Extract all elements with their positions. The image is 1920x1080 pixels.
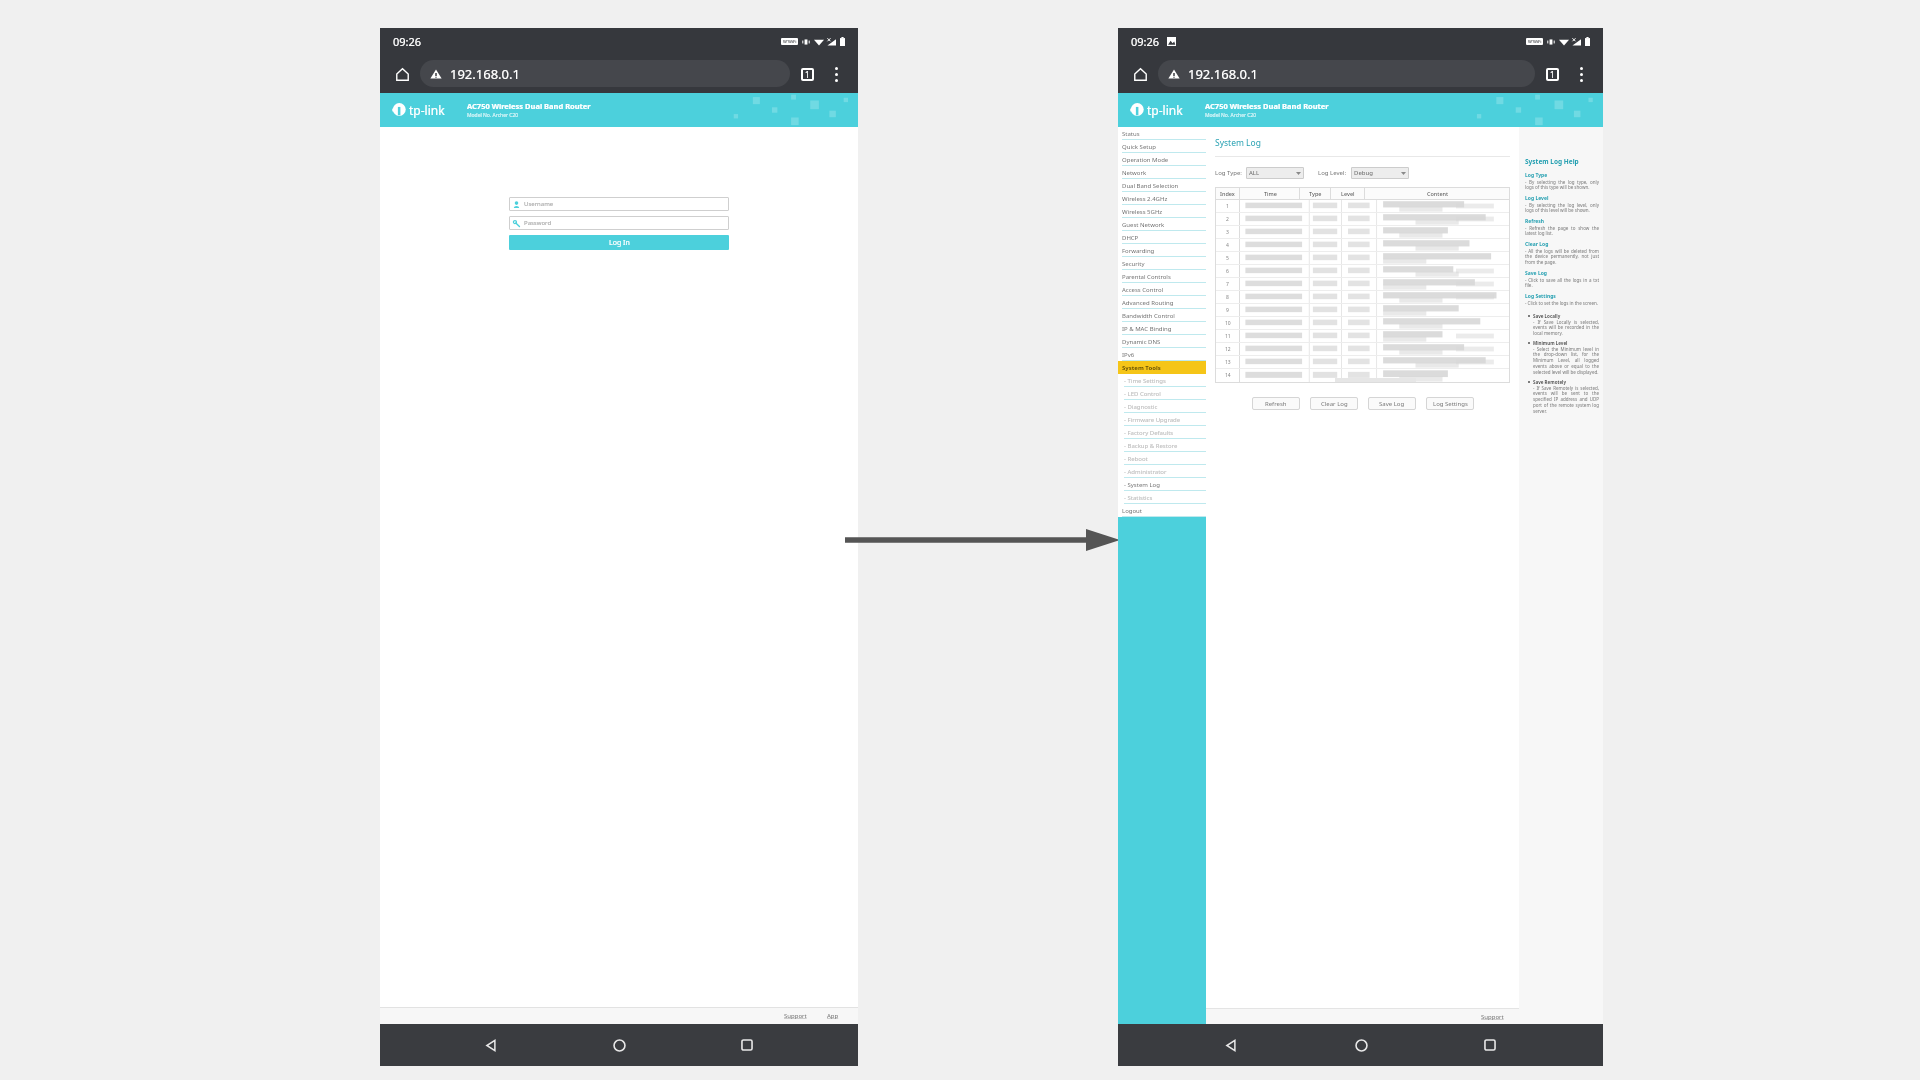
staticText: Dual Band Selection bbox=[1122, 182, 1179, 190]
staticText: AC750 Wireless Dual Band Router bbox=[467, 101, 591, 111]
staticText: - If Save Remotely is selected, events w… bbox=[1533, 385, 1599, 415]
button[interactable]: Access Control bbox=[1118, 283, 1206, 296]
staticText: Refresh bbox=[1525, 218, 1545, 225]
staticText: - Click to set the logs in the screen. bbox=[1525, 300, 1598, 306]
button[interactable]: System Tools bbox=[1118, 361, 1206, 374]
staticText: Log Type: bbox=[1215, 169, 1242, 177]
button[interactable]: Log In bbox=[509, 235, 729, 250]
staticText: Model No. Archer C20 bbox=[1205, 112, 1257, 119]
button[interactable]: Recents bbox=[730, 1028, 764, 1062]
staticText: Type bbox=[1309, 190, 1322, 197]
button[interactable]: Log Settings bbox=[1426, 397, 1474, 410]
staticText: Security bbox=[1122, 260, 1145, 268]
staticText: Model No. Archer C20 bbox=[467, 112, 519, 119]
staticText: Save Log bbox=[1379, 400, 1405, 408]
staticText: Log Level: bbox=[1318, 169, 1347, 177]
button[interactable]: Security bbox=[1118, 257, 1206, 270]
button[interactable]: Guest Network bbox=[1118, 218, 1206, 231]
staticText: App bbox=[827, 1012, 839, 1020]
staticText: 5 bbox=[1226, 255, 1229, 262]
staticText: Log Settings bbox=[1433, 400, 1468, 408]
button[interactable]: Password bbox=[509, 216, 729, 230]
button[interactable]: - LED Control bbox=[1118, 387, 1206, 400]
button[interactable]: - Factory Defaults bbox=[1118, 426, 1206, 439]
button[interactable]: More options bbox=[1568, 61, 1594, 87]
staticText: - Diagnostic bbox=[1124, 403, 1158, 411]
staticText: Parental Controls bbox=[1122, 273, 1171, 281]
button[interactable]: 192.168.0.1 bbox=[1158, 60, 1535, 87]
staticText: 1 bbox=[1226, 203, 1229, 210]
button[interactable]: Back bbox=[1214, 1028, 1248, 1062]
staticText: IPv6 bbox=[1122, 351, 1135, 359]
button[interactable]: Tabs bbox=[794, 61, 820, 87]
staticText: Refresh bbox=[1265, 400, 1287, 408]
button[interactable]: - System Log bbox=[1118, 478, 1206, 491]
staticText: 11 bbox=[1225, 333, 1231, 340]
staticText: 1 bbox=[1550, 69, 1555, 80]
button[interactable]: Dual Band Selection bbox=[1118, 179, 1206, 192]
staticText: tp-link bbox=[1147, 102, 1183, 118]
button[interactable]: - Backup & Restore bbox=[1118, 439, 1206, 452]
button[interactable]: Refresh bbox=[1252, 397, 1300, 410]
button[interactable]: Status bbox=[1118, 127, 1206, 140]
button[interactable]: Username bbox=[509, 197, 729, 211]
staticText: Time bbox=[1264, 190, 1277, 197]
button[interactable]: DHCP bbox=[1118, 231, 1206, 244]
button[interactable]: Logout bbox=[1118, 504, 1206, 517]
button[interactable]: - Statistics bbox=[1118, 491, 1206, 504]
staticText: 4 bbox=[1226, 242, 1229, 249]
staticText: System Log bbox=[1215, 137, 1261, 149]
button[interactable]: Quick Setup bbox=[1118, 140, 1206, 153]
button[interactable]: ALL bbox=[1246, 167, 1304, 179]
staticText: System Log Help bbox=[1525, 157, 1579, 166]
button[interactable]: - Time Settings bbox=[1118, 374, 1206, 387]
button[interactable]: Forwarding bbox=[1118, 244, 1206, 257]
staticText: Operation Mode bbox=[1122, 156, 1169, 164]
staticText: - All the logs will be deleted from the … bbox=[1525, 248, 1599, 266]
button[interactable]: - Reboot bbox=[1118, 452, 1206, 465]
button[interactable]: - Diagnostic bbox=[1118, 400, 1206, 413]
button[interactable]: Network bbox=[1118, 166, 1206, 179]
staticText: - Select the Minimum level in the drop-d… bbox=[1533, 346, 1599, 376]
button[interactable]: Support bbox=[1478, 1013, 1507, 1021]
button[interactable]: Parental Controls bbox=[1118, 270, 1206, 283]
staticText: Save Log bbox=[1525, 270, 1547, 277]
button[interactable]: Recents bbox=[1473, 1028, 1507, 1062]
staticText: Log Type bbox=[1525, 172, 1548, 179]
staticText: 09:26 bbox=[1131, 34, 1160, 49]
button[interactable]: Bandwidth Control bbox=[1118, 309, 1206, 322]
button[interactable]: Back bbox=[474, 1028, 508, 1062]
button[interactable]: Home bbox=[602, 1028, 636, 1062]
button[interactable]: App bbox=[824, 1012, 842, 1020]
staticText: 14 bbox=[1225, 372, 1231, 379]
button[interactable]: Operation Mode bbox=[1118, 153, 1206, 166]
button[interactable]: 192.168.0.1 bbox=[420, 60, 790, 87]
button[interactable]: IP & MAC Binding bbox=[1118, 322, 1206, 335]
button[interactable]: Save Log bbox=[1368, 397, 1416, 410]
button[interactable]: Tabs bbox=[1539, 61, 1565, 87]
staticText: Quick Setup bbox=[1122, 143, 1156, 151]
button[interactable]: - Firmware Upgrade bbox=[1118, 413, 1206, 426]
staticText: - Backup & Restore bbox=[1124, 442, 1178, 450]
button[interactable]: Support bbox=[781, 1012, 810, 1020]
button[interactable]: Dynamic DNS bbox=[1118, 335, 1206, 348]
staticText: 8 bbox=[1226, 294, 1229, 301]
button[interactable]: Home bbox=[1127, 61, 1153, 87]
staticText: Level bbox=[1341, 190, 1355, 197]
staticText: Dynamic DNS bbox=[1122, 338, 1161, 346]
button[interactable]: Advanced Routing bbox=[1118, 296, 1206, 309]
button[interactable]: Home bbox=[389, 61, 415, 87]
staticText: System Tools bbox=[1122, 364, 1161, 372]
staticText: - System Log bbox=[1124, 481, 1160, 489]
button[interactable]: Clear Log bbox=[1310, 397, 1358, 410]
button[interactable]: IPv6 bbox=[1118, 348, 1206, 361]
button[interactable]: Home bbox=[1344, 1028, 1378, 1062]
staticText: ALL bbox=[1249, 169, 1260, 177]
button[interactable]: More options bbox=[823, 61, 849, 87]
button[interactable]: Wireless 2.4GHz bbox=[1118, 192, 1206, 205]
button[interactable]: Wireless 5GHz bbox=[1118, 205, 1206, 218]
staticText: Save Locally bbox=[1533, 313, 1561, 319]
button[interactable]: Debug bbox=[1351, 167, 1409, 179]
staticText: Save Remotely bbox=[1533, 379, 1566, 385]
button[interactable]: - Administrator bbox=[1118, 465, 1206, 478]
